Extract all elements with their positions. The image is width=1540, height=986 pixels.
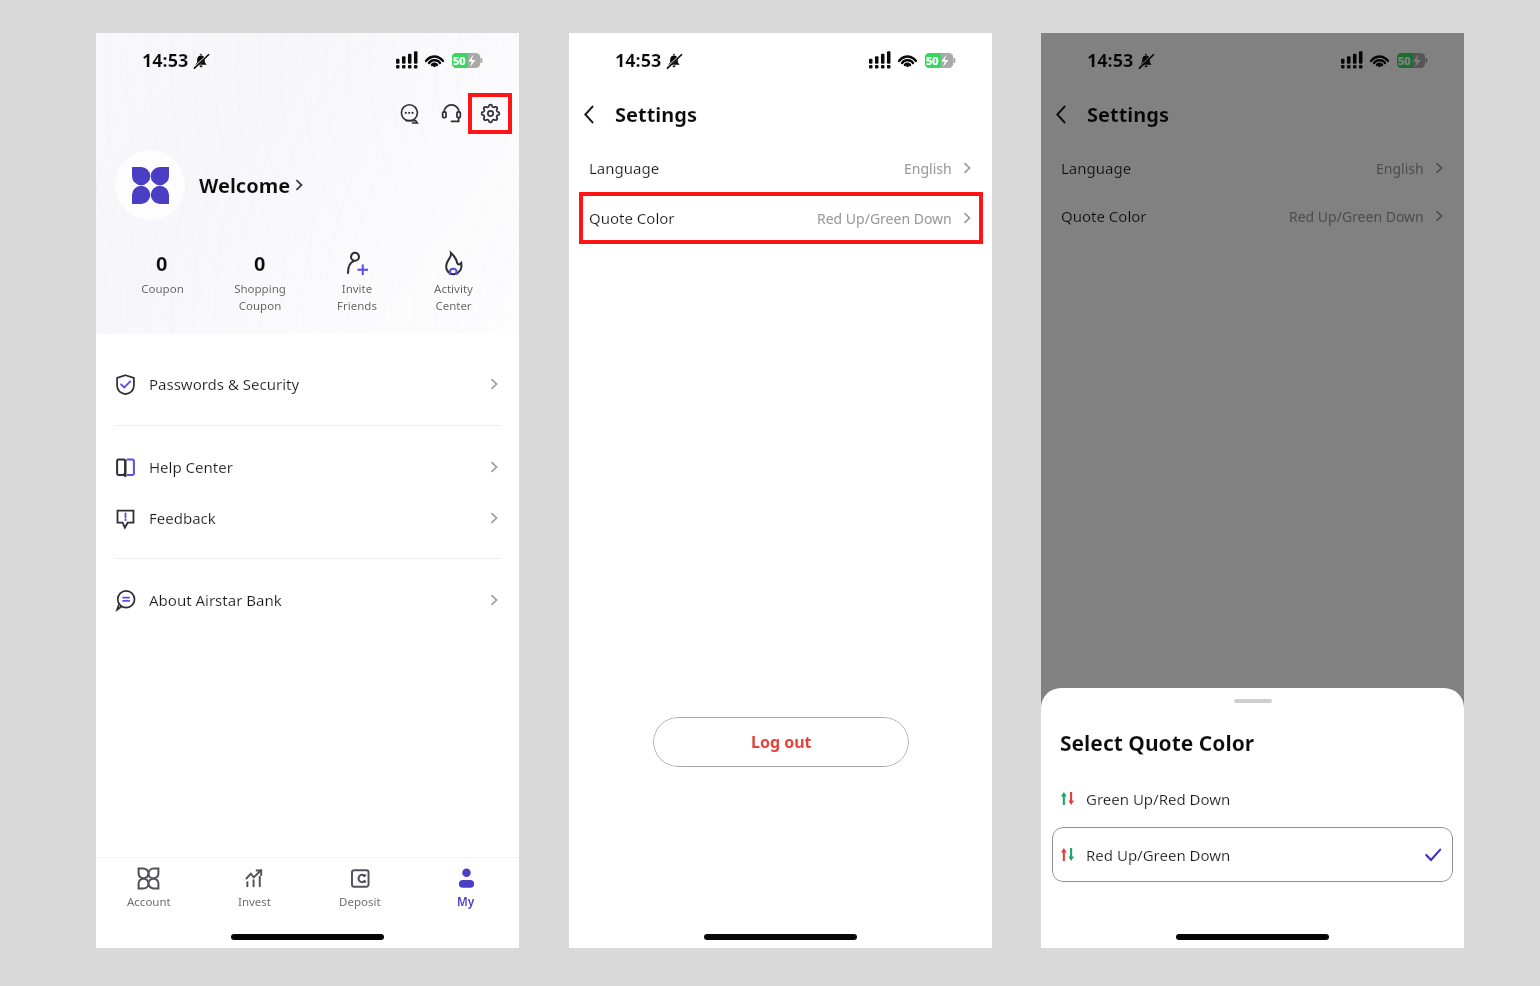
button[interactable]: Customer support — [433, 95, 470, 132]
staticText: Red Up/Green Down — [817, 209, 952, 228]
button[interactable]: 0 — [113, 250, 211, 297]
button[interactable]: Help Center — [96, 441, 519, 492]
button[interactable]: Invest — [201, 858, 307, 918]
staticText: Welcome — [199, 172, 291, 199]
staticText: Log out — [751, 731, 812, 753]
staticText: Account — [127, 894, 171, 910]
button[interactable]: Language — [569, 144, 992, 192]
button[interactable]: Quote Color — [1041, 192, 1464, 240]
staticText: English — [904, 159, 952, 178]
staticText: 0 — [156, 250, 168, 276]
staticText: Activity Center — [434, 281, 473, 313]
staticText: Red Up/Green Down — [1086, 845, 1231, 865]
staticText: Language — [1061, 158, 1132, 178]
staticText: Coupon — [141, 281, 184, 297]
button[interactable]: Welcome — [115, 150, 311, 220]
staticText: Shopping Coupon — [234, 281, 286, 313]
staticText: Invite Friends — [337, 281, 377, 313]
staticText: 50 — [1398, 53, 1411, 68]
staticText: English — [1376, 159, 1424, 178]
button[interactable]: Activity Center — [405, 250, 502, 313]
button[interactable]: Language — [1041, 144, 1464, 192]
staticText: Language — [589, 158, 660, 178]
button[interactable]: My — [413, 858, 519, 918]
staticText: Settings — [1087, 101, 1169, 128]
button[interactable]: Passwords & Security — [96, 358, 519, 409]
staticText: Deposit — [339, 894, 381, 910]
button[interactable]: Green Up/Red Down — [1052, 771, 1453, 826]
button[interactable]: Deposit — [307, 858, 413, 918]
staticText: Passwords & Security — [149, 374, 300, 394]
button[interactable]: Red Up/Green Down — [1052, 827, 1453, 882]
button[interactable]: Settings — [468, 93, 512, 134]
button[interactable]: Log out — [653, 717, 909, 767]
staticText: Settings — [615, 101, 697, 128]
staticText: 14:53 — [142, 48, 189, 73]
button[interactable]: 0 — [211, 250, 308, 313]
staticText: Select Quote Color — [1060, 729, 1255, 758]
button[interactable]: Messages — [391, 95, 428, 132]
staticText: About Airstar Bank — [149, 590, 282, 610]
button[interactable]: About Airstar Bank — [96, 574, 519, 625]
button[interactable]: Invite Friends — [308, 250, 405, 313]
staticText: 50 — [926, 53, 939, 68]
button[interactable]: Account — [96, 858, 201, 918]
staticText: Help Center — [149, 457, 233, 477]
button[interactable]: Quote Color — [579, 192, 983, 244]
staticText: 14:53 — [1087, 48, 1134, 73]
staticText: My — [457, 894, 475, 910]
staticText: Green Up/Red Down — [1086, 789, 1231, 809]
staticText: Quote Color — [589, 208, 675, 228]
staticText: Red Up/Green Down — [1289, 207, 1424, 226]
button[interactable]: Feedback — [96, 492, 519, 543]
button[interactable]: Back — [571, 96, 607, 132]
staticText: 14:53 — [615, 48, 662, 73]
staticText: Invest — [238, 894, 271, 910]
staticText: Quote Color — [1061, 206, 1147, 226]
staticText: Feedback — [149, 508, 216, 528]
staticText: 50 — [453, 53, 466, 68]
staticText: 0 — [254, 250, 266, 276]
